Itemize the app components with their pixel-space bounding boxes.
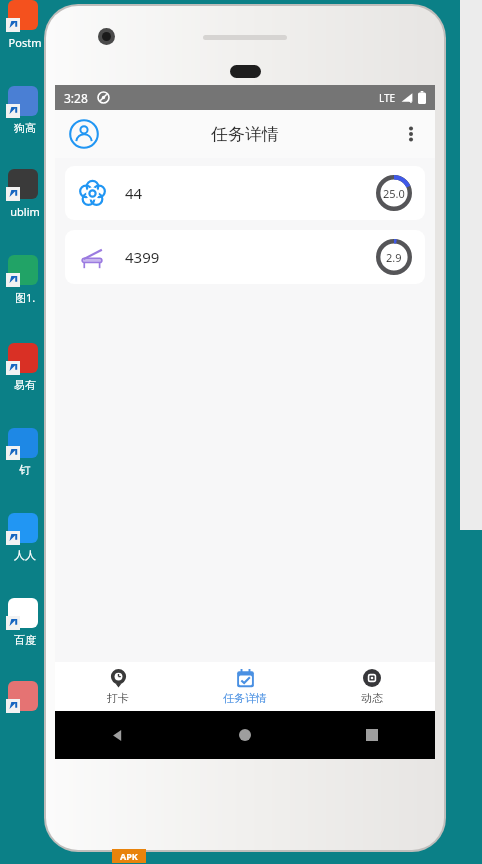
staticText: 人人 — [0, 548, 50, 562]
button[interactable]: Home — [181, 711, 308, 759]
staticText: 动态 — [361, 691, 383, 705]
staticText: 4399 — [125, 247, 160, 267]
staticText: 3:28 — [64, 90, 88, 106]
button[interactable]: 4399 — [65, 230, 425, 284]
button[interactable]: 44 — [65, 166, 425, 220]
staticText: 任务详情 — [223, 691, 267, 705]
button[interactable]: Back — [55, 711, 181, 759]
button[interactable]: 打卡 — [55, 662, 181, 711]
staticText: 易有 — [0, 378, 50, 392]
staticText: 2.9 — [386, 250, 402, 265]
button[interactable]: More options — [393, 116, 429, 152]
staticText: ublim — [0, 204, 50, 219]
staticText: 25.0 — [383, 186, 405, 201]
staticText: 打卡 — [107, 691, 129, 705]
staticText: 钉 — [0, 463, 50, 477]
staticText: APK — [120, 850, 138, 862]
staticText: Postm — [0, 35, 50, 50]
staticText: 百度 — [0, 633, 50, 647]
staticText: 狗高 — [0, 121, 50, 135]
staticText: 任务详情 — [211, 124, 279, 145]
button[interactable]: 动态 — [308, 662, 435, 711]
staticText: 图1. — [0, 290, 50, 305]
staticText: 44 — [125, 183, 143, 203]
button[interactable]: Recent apps — [308, 711, 435, 759]
staticText: LTE — [379, 91, 396, 105]
button[interactable]: Profile — [65, 115, 103, 153]
button[interactable]: 任务详情 — [181, 662, 308, 711]
